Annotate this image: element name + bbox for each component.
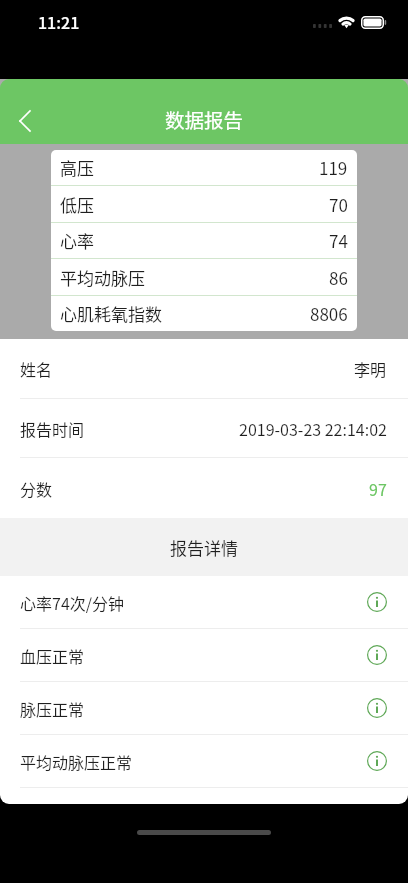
staticText: 报告时间 [20,417,85,440]
staticText: 血压正常 [20,644,85,667]
staticText: 心率74次/分钟 [20,591,125,614]
staticText: 报告详情 [170,535,238,560]
other: Info [367,592,387,612]
staticText: 李明 [354,357,387,380]
staticText: 平均动脉压正常 [20,750,133,773]
button[interactable]: Back [4,98,46,140]
staticText: 高压 [60,155,94,180]
staticText: 心肌耗氧指数 [60,301,162,326]
staticText: 平均动脉压 [60,265,145,290]
staticText: 数据报告 [165,105,244,133]
staticText: 97 [369,477,387,500]
staticText: 119 [319,155,348,180]
staticText: 70 [329,192,348,217]
staticText: 姓名 [20,357,53,380]
other: Info [367,751,387,771]
staticText: 脉压正常 [20,697,85,720]
staticText: 11:21 [38,10,80,33]
staticText: 分数 [20,477,53,500]
staticText: 心率 [60,228,94,253]
staticText: 低压 [60,192,94,217]
staticText: 8806 [310,301,348,326]
button[interactable]: 心率74次/分钟 [0,576,408,629]
button[interactable]: 平均动脉压正常 [0,735,408,788]
staticText: 74 [329,228,348,253]
other: Info [367,698,387,718]
staticText: 86 [329,265,348,290]
button[interactable]: 血压正常 [0,629,408,682]
button[interactable]: 脉压正常 [0,682,408,735]
staticText: 2019-03-23 22:14:02 [239,417,387,440]
other: Info [367,645,387,665]
